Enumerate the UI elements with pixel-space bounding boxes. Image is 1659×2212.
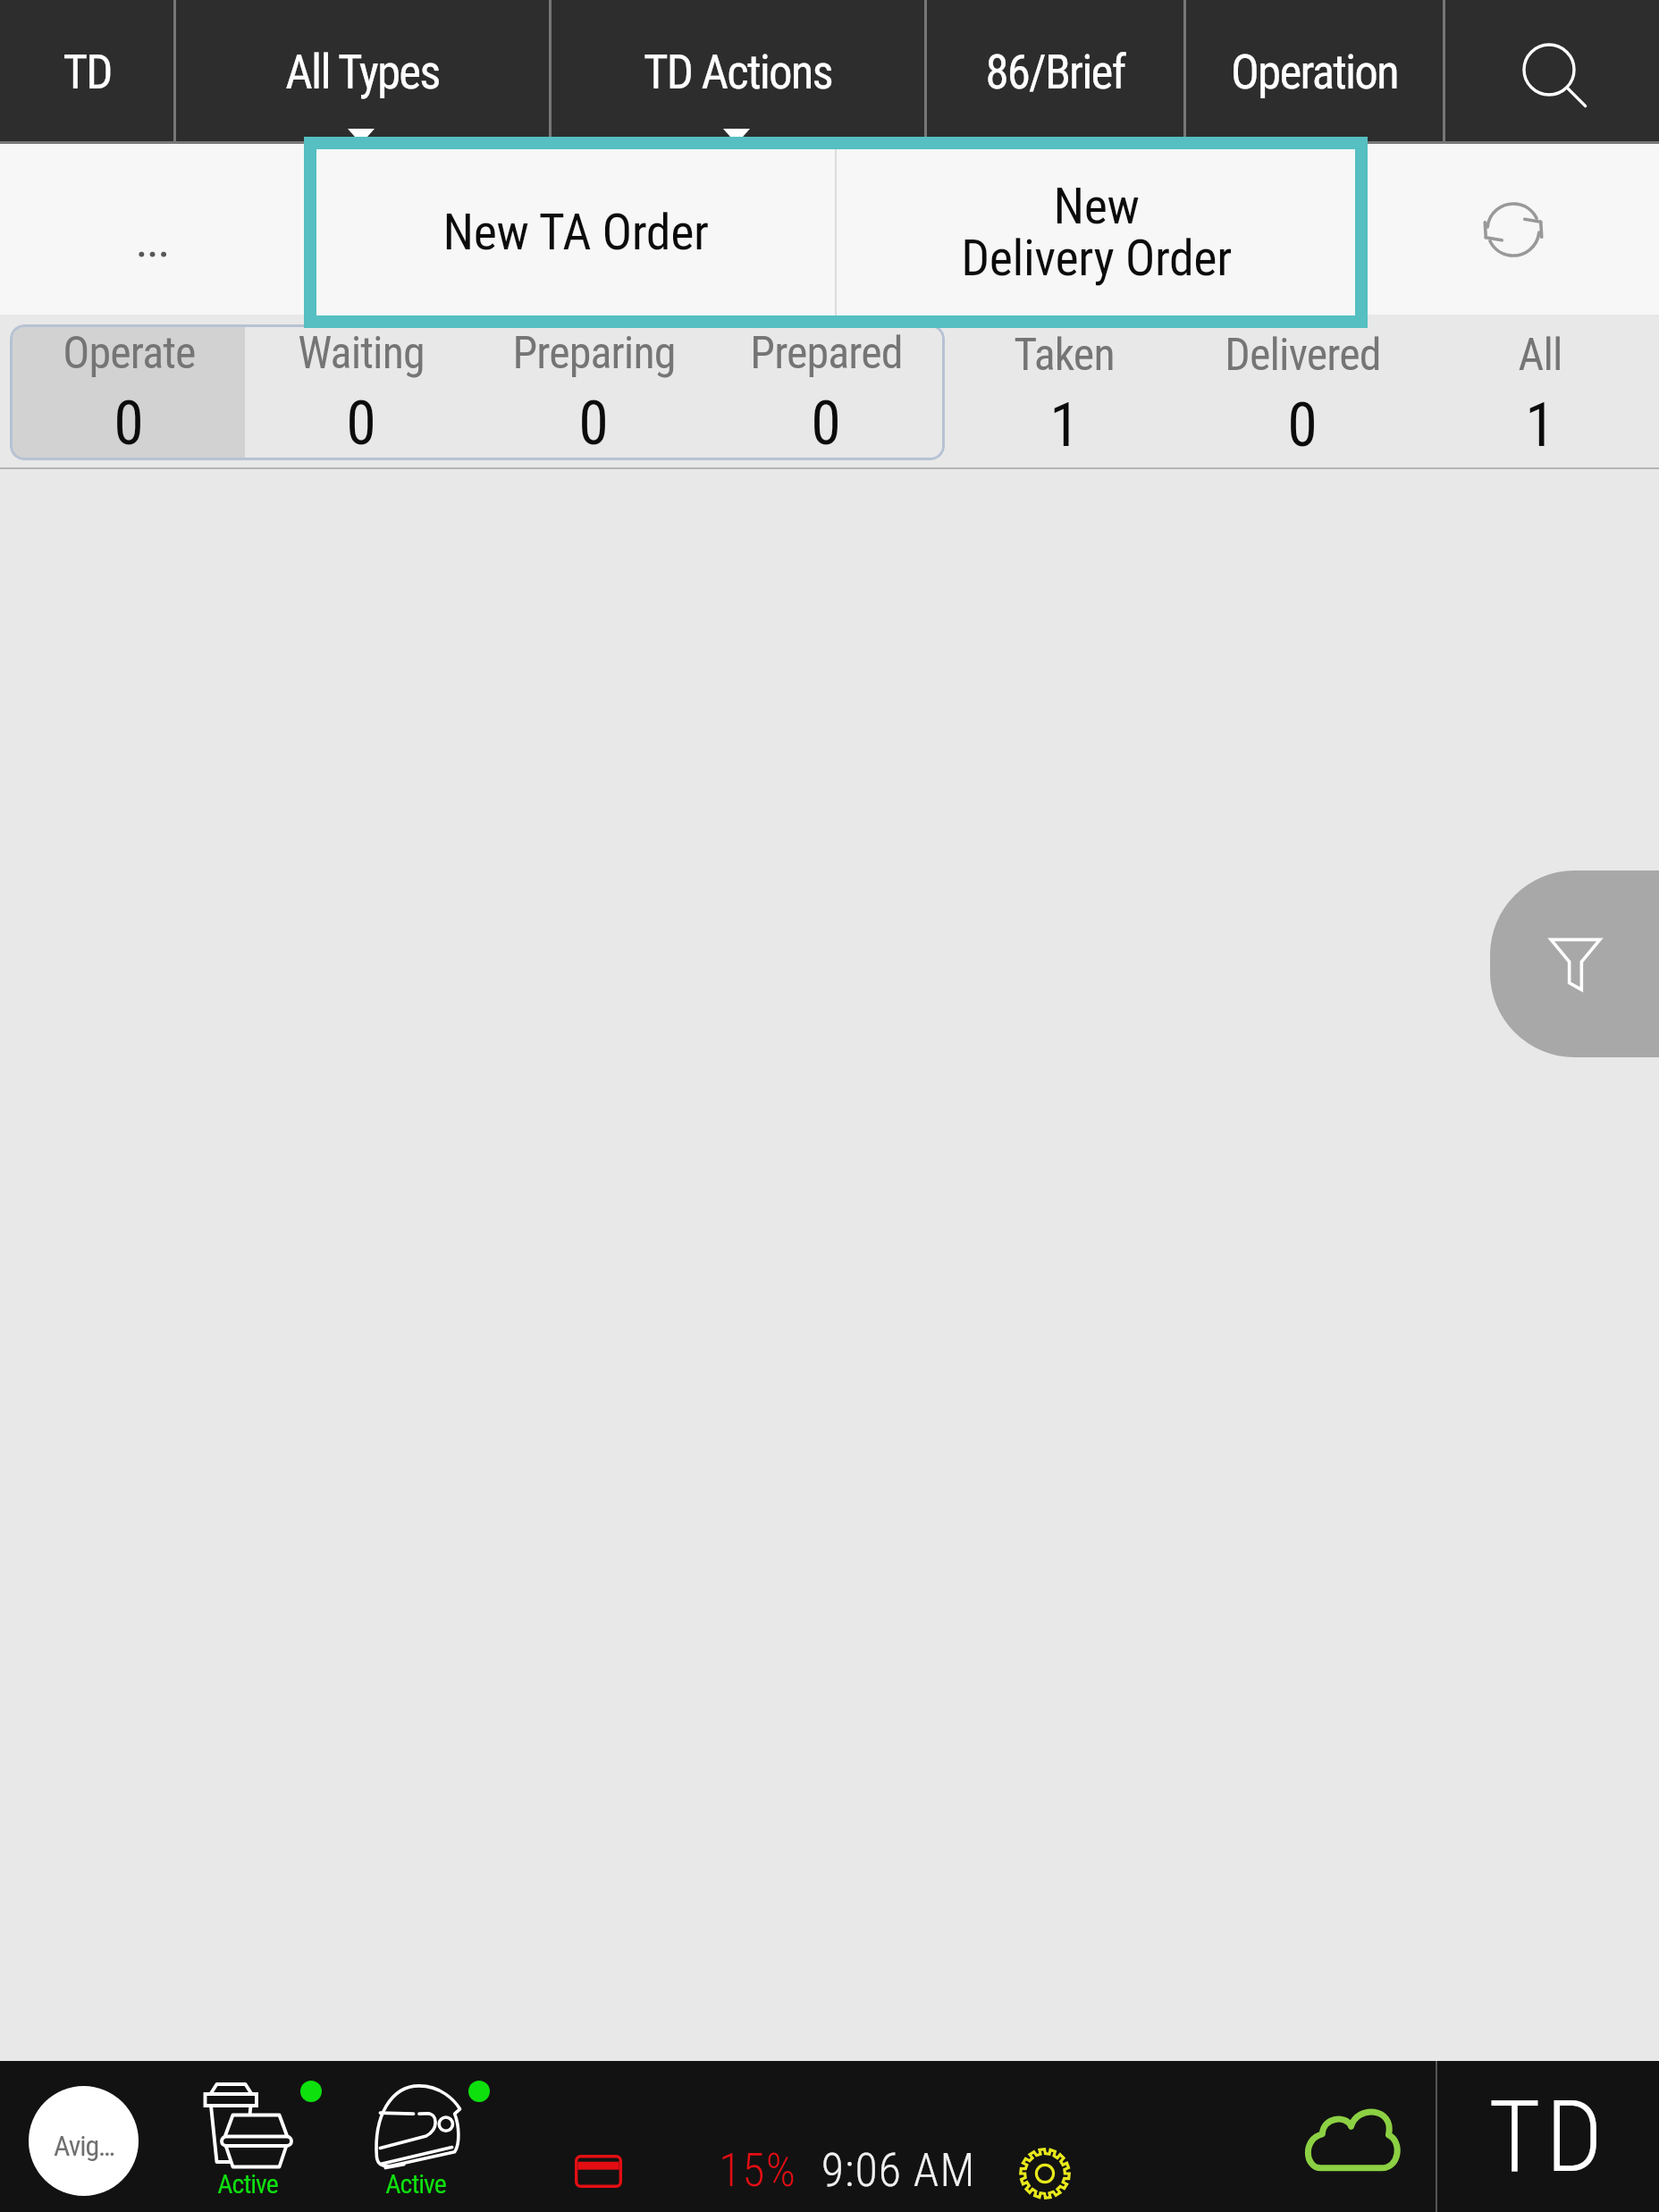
staticText: Operate [63,327,196,380]
staticText: Waiting [298,327,425,380]
staticText: Active [371,2168,460,2199]
button[interactable]: TD [1437,2061,1659,2212]
button[interactable]: Operation [1186,0,1443,144]
staticText: Active [203,2168,292,2199]
staticText: Taken [1014,329,1115,382]
staticText: Prepared [750,327,903,380]
button[interactable]: Avig… [29,2086,139,2196]
button[interactable]: New TA Order [316,149,835,315]
staticText: Preparing [512,327,676,380]
staticText: New Delivery Order [961,177,1232,288]
staticText: 86/Brief [985,45,1125,100]
button[interactable]: Taken [945,320,1183,469]
button[interactable]: Takeaway status [204,2081,293,2170]
staticText: 0 [811,388,841,458]
button[interactable]: TD Actions [552,0,924,144]
button[interactable]: 86/Brief [927,0,1183,144]
staticText: All [1518,329,1562,382]
button[interactable]: Preparing [477,327,710,458]
button[interactable]: Filter [1490,871,1659,1057]
button[interactable]: Waiting [245,327,477,458]
staticText: 1 [1525,390,1555,461]
button[interactable]: Delivery status [374,2083,461,2169]
staticText: TD [1488,2078,1608,2195]
staticText: 9:06 AM [813,2143,983,2198]
staticText: New TA Order [442,203,709,262]
staticText: Avig… [54,2129,114,2163]
staticText: TD [63,45,112,100]
staticText: 1 [1049,390,1080,461]
button[interactable]: Settings [1019,2148,1071,2199]
staticText: All Types [285,45,440,100]
button[interactable]: All [1421,320,1659,469]
button[interactable]: Refresh [1368,144,1659,315]
button[interactable]: ... [0,144,304,315]
staticText: 0 [346,388,376,458]
button[interactable]: Search [1445,0,1659,144]
staticText: 0 [114,388,144,458]
button[interactable]: Delivered [1183,320,1421,469]
staticText: Operation [1231,45,1398,100]
staticText: 0 [578,388,609,458]
button[interactable]: TD [0,0,173,144]
button[interactable]: Operate [13,327,245,458]
button[interactable]: Prepared [710,327,942,458]
staticText: 15% [706,2143,809,2198]
staticText: 0 [1287,390,1318,461]
button[interactable]: All Types [176,0,549,144]
button[interactable]: New Delivery Order [837,149,1355,315]
staticText: Delivered [1225,329,1381,382]
button[interactable]: Cloud sync [1287,2061,1436,2212]
staticText: TD Actions [644,45,832,100]
staticText: ... [135,212,169,268]
